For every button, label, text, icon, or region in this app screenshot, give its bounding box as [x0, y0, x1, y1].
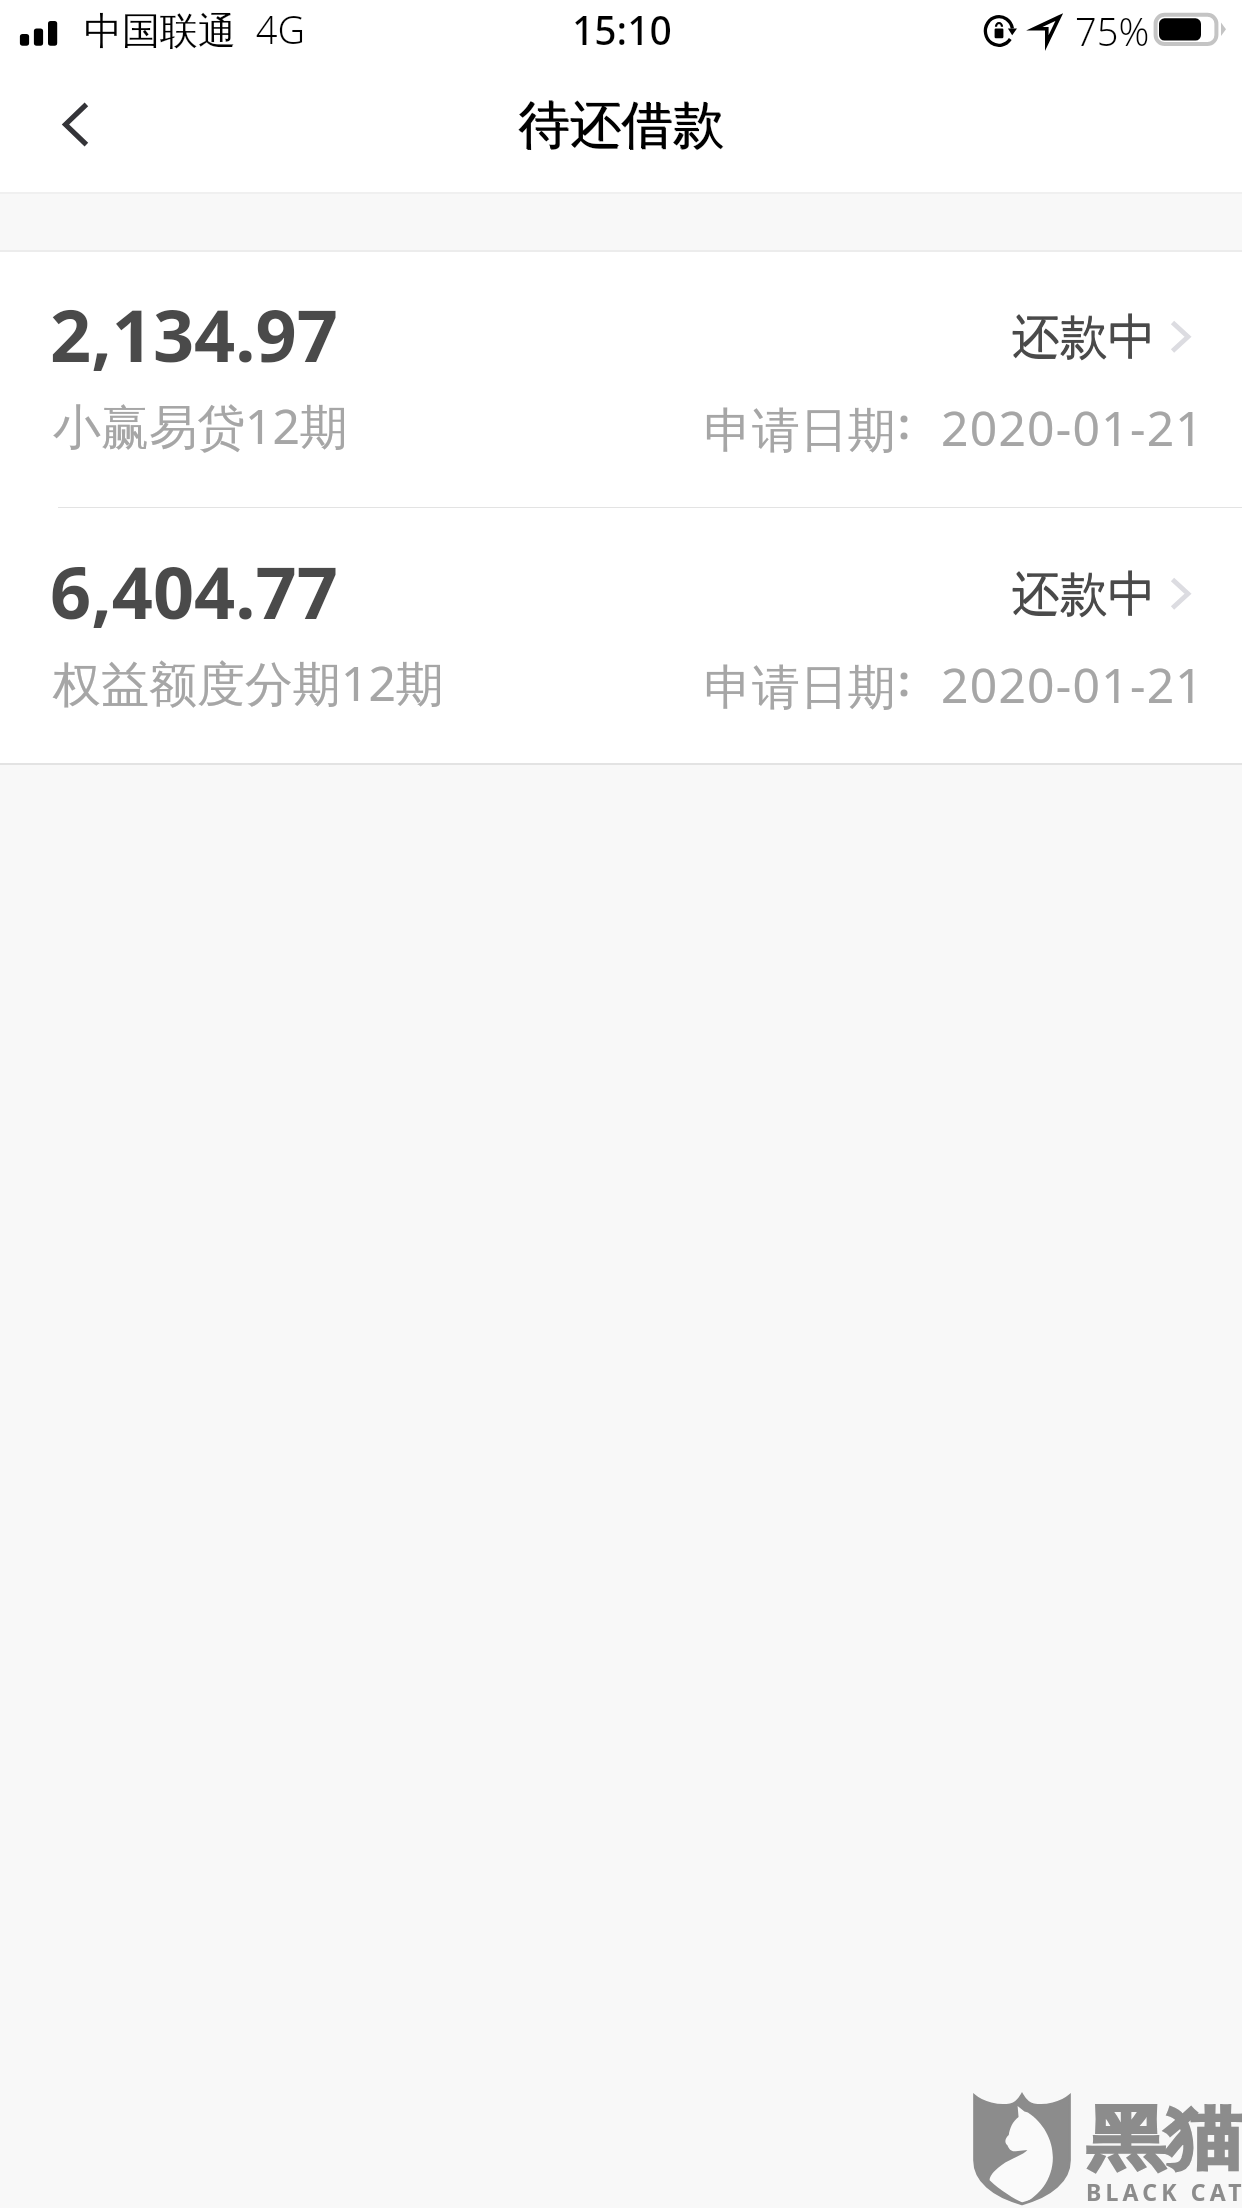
- staticText: 权益额度分期12期: [53, 650, 444, 716]
- staticText: 申请日期: [704, 658, 896, 718]
- button[interactable]: 2,134.97: [0, 252, 1242, 507]
- staticText: 2020-01-21: [941, 395, 1205, 460]
- staticText: 待还借款: [518, 92, 724, 157]
- staticText: 黑猫: [1086, 2096, 1242, 2183]
- staticText: 2020-01-21: [941, 652, 1205, 717]
- staticText: 还款中: [1012, 307, 1156, 367]
- staticText: 小赢易贷12期: [53, 393, 348, 459]
- button[interactable]: Back: [0, 70, 134, 192]
- staticText: 中国联通 4G: [84, 3, 305, 55]
- staticText: 待还借款: [519, 93, 725, 158]
- staticText: 还款中: [1012, 565, 1156, 625]
- staticText: 6,404.77: [50, 542, 338, 640]
- button[interactable]: 6,404.77: [0, 509, 1242, 764]
- staticText: 申请日期: [704, 401, 896, 461]
- staticText: 15:10: [572, 3, 672, 56]
- staticText: 75%: [1075, 5, 1150, 57]
- staticText: 还款中: [1012, 308, 1156, 368]
- staticText: 还款中: [1012, 564, 1156, 624]
- staticText: 2,134.97: [50, 285, 338, 383]
- staticText: BLACK CAT: [1086, 2176, 1242, 2207]
